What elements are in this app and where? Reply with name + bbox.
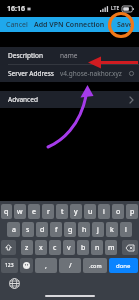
- staticText: done: [116, 262, 131, 270]
- button[interactable]: Backspace: [122, 240, 138, 255]
- button[interactable]: k: [106, 222, 118, 237]
- staticText: Description: [8, 51, 43, 60]
- button[interactable]: Save: [111, 18, 139, 32]
- staticText: j: [97, 225, 99, 235]
- staticText: Cancel: [6, 20, 28, 30]
- staticText: Add VPN Connection: [34, 20, 105, 30]
- button[interactable]: Description: [0, 47, 139, 64]
- button[interactable]: j: [92, 222, 104, 237]
- staticText: e: [32, 207, 36, 217]
- staticText: l: [125, 225, 127, 235]
- staticText: i: [103, 207, 105, 217]
- staticText: o: [116, 207, 121, 217]
- button[interactable]: r: [42, 204, 54, 219]
- staticText: v: [67, 243, 71, 253]
- button[interactable]: Cancel: [0, 18, 34, 32]
- button[interactable]: a: [7, 222, 20, 237]
- staticText: h: [82, 225, 87, 235]
- button[interactable]: ,: [35, 258, 57, 273]
- staticText: x: [39, 243, 43, 253]
- button[interactable]: x: [35, 240, 47, 255]
- staticText: f: [55, 225, 58, 235]
- button[interactable]: 123: [1, 258, 18, 273]
- staticText: q: [4, 207, 9, 217]
- button[interactable]: Emoji: [20, 258, 33, 273]
- button[interactable]: Advanced: [0, 91, 139, 108]
- staticText: 123: [5, 262, 14, 269]
- staticText: c: [53, 243, 57, 253]
- button[interactable]: n: [91, 240, 103, 255]
- button[interactable]: y: [70, 204, 82, 219]
- staticText: LTE: [111, 5, 120, 12]
- button[interactable]: l: [120, 222, 132, 237]
- staticText: u: [88, 207, 93, 217]
- button[interactable]: b: [77, 240, 89, 255]
- staticText: r: [47, 207, 50, 217]
- staticText: 16:16: [7, 4, 25, 14]
- button[interactable]: c: [49, 240, 61, 255]
- staticText: y: [74, 207, 78, 217]
- staticText: v4.ghose-nakhor.xyz: [60, 69, 122, 78]
- button[interactable]: p: [126, 204, 138, 219]
- button[interactable]: z: [21, 240, 33, 255]
- button[interactable]: d: [36, 222, 48, 237]
- button[interactable]: /: [59, 258, 81, 273]
- staticText: p: [130, 207, 135, 217]
- staticText: k: [110, 225, 114, 235]
- button[interactable]: i: [98, 204, 110, 219]
- staticText: /: [69, 261, 72, 271]
- button[interactable]: f: [50, 222, 62, 237]
- button[interactable]: done: [109, 258, 138, 273]
- button[interactable]: e: [28, 204, 40, 219]
- staticText: .com: [89, 262, 102, 269]
- button[interactable]: s: [22, 222, 34, 237]
- staticText: ,: [45, 261, 47, 271]
- staticText: s: [26, 225, 30, 235]
- button[interactable]: Change keyboard: [9, 278, 20, 289]
- button[interactable]: w: [14, 204, 26, 219]
- staticText: Advanced: [8, 95, 38, 104]
- staticText: d: [40, 225, 45, 235]
- staticText: t: [61, 207, 64, 217]
- button[interactable]: h: [78, 222, 90, 237]
- staticText: g: [68, 225, 73, 235]
- staticText: w: [17, 207, 23, 217]
- staticText: Save: [117, 20, 133, 30]
- staticText: name: [60, 51, 78, 60]
- staticText: z: [25, 243, 29, 253]
- button[interactable]: v: [63, 240, 75, 255]
- button[interactable]: q: [1, 204, 12, 219]
- button[interactable]: t: [56, 204, 68, 219]
- button[interactable]: g: [64, 222, 76, 237]
- staticText: m: [108, 243, 115, 253]
- button[interactable]: u: [84, 204, 96, 219]
- staticText: a: [12, 225, 16, 235]
- staticText: b: [81, 243, 86, 253]
- staticText: Server Address: [8, 69, 54, 78]
- button[interactable]: o: [112, 204, 124, 219]
- button[interactable]: m: [105, 240, 117, 255]
- button[interactable]: .com: [83, 258, 107, 273]
- staticText: n: [95, 243, 100, 253]
- button[interactable]: Shift: [1, 240, 16, 255]
- button[interactable]: Server Address: [0, 65, 139, 82]
